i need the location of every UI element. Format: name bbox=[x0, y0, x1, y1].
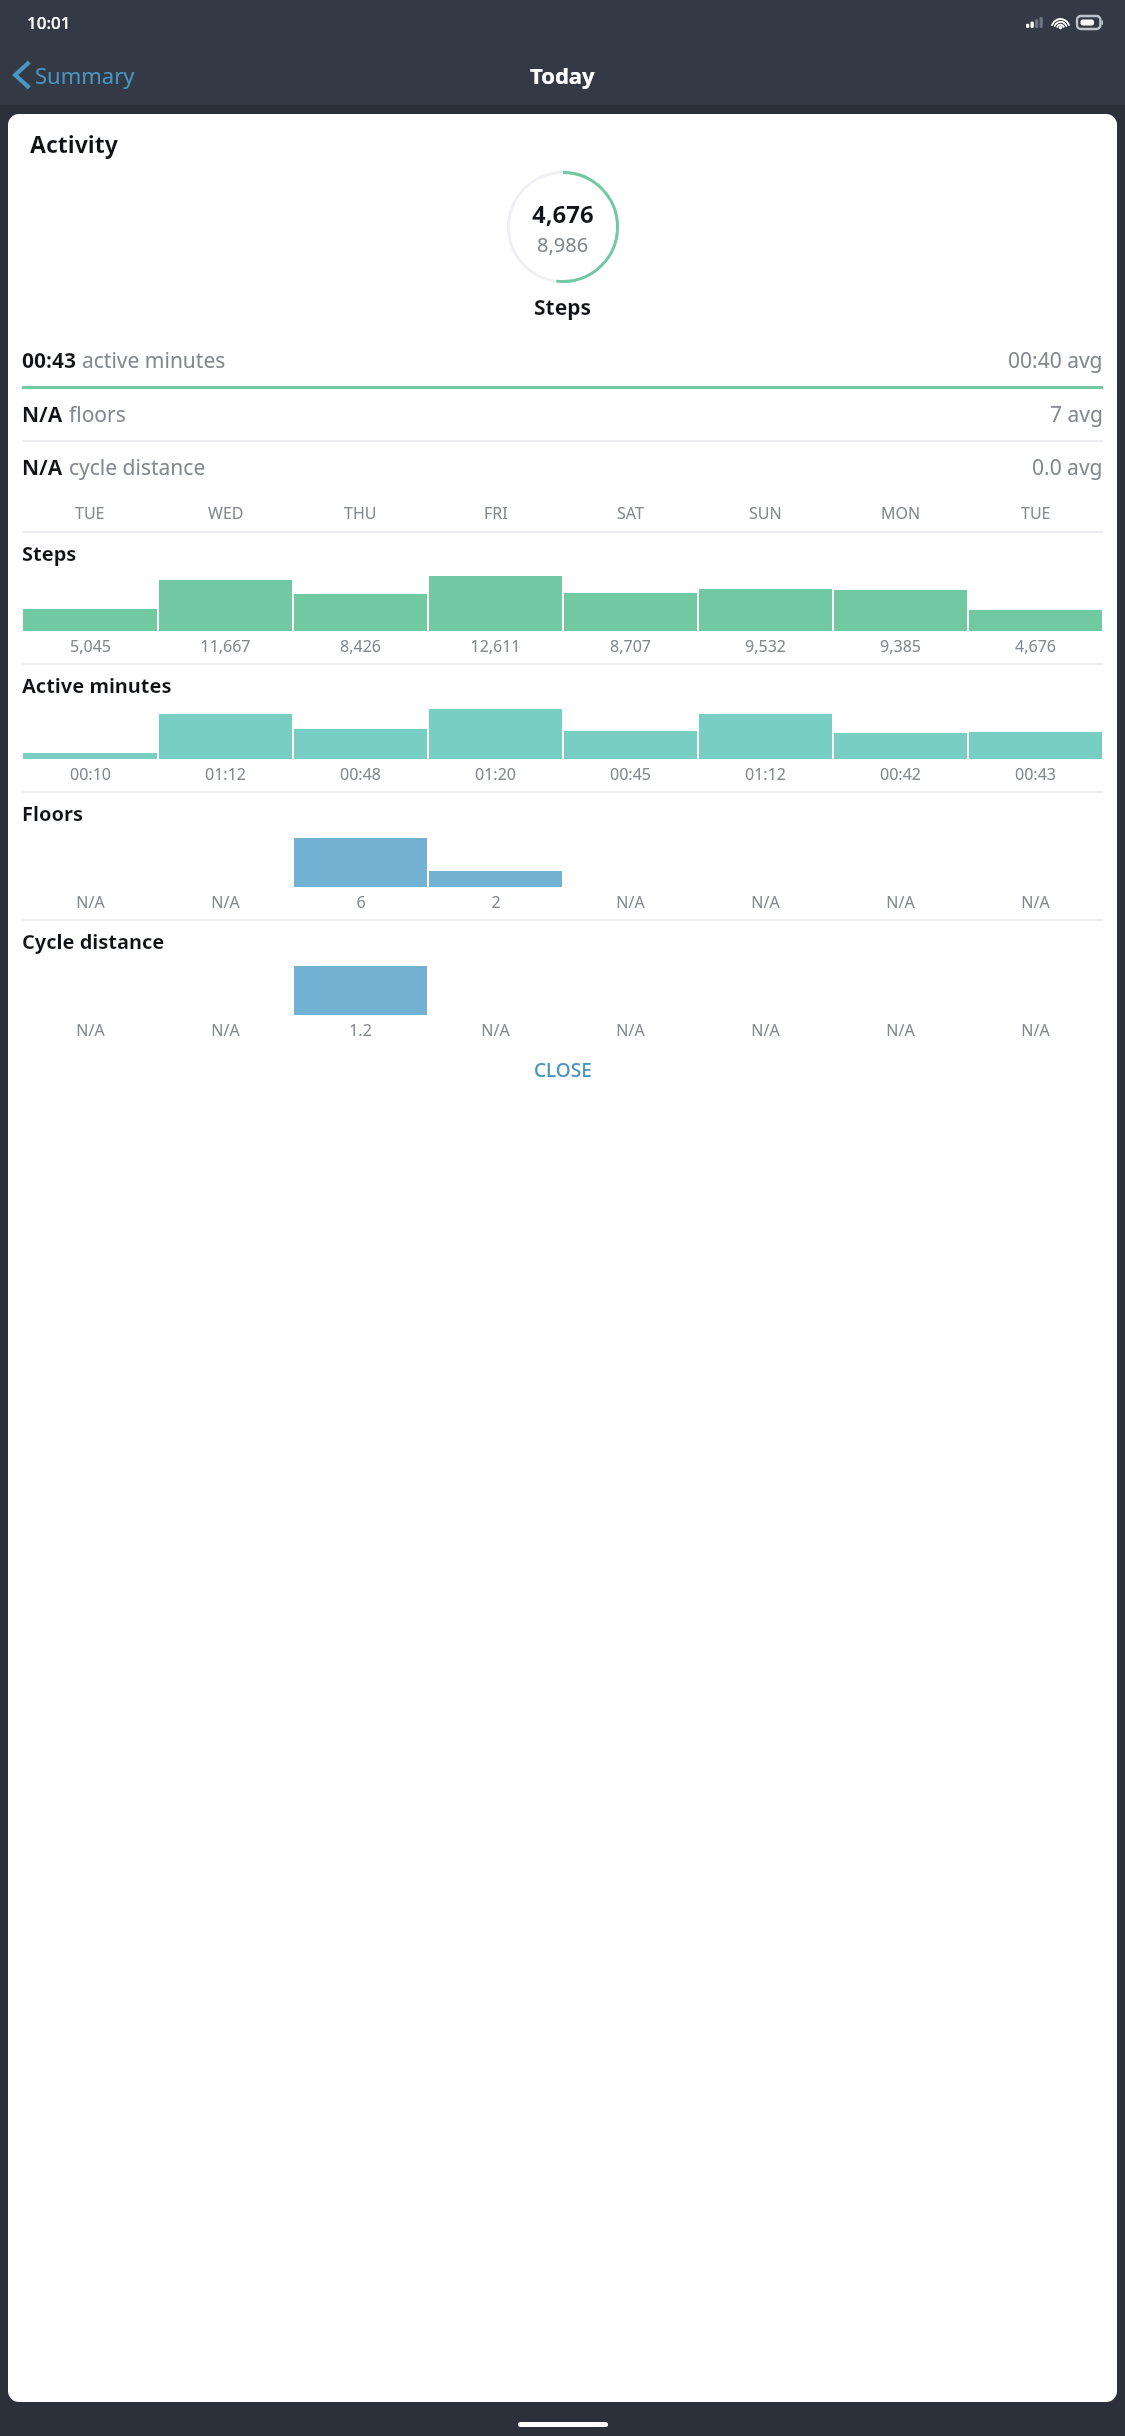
staticText: 2 bbox=[491, 891, 501, 913]
staticText: SUN bbox=[749, 502, 782, 524]
staticText: N/A bbox=[616, 1019, 645, 1041]
staticText: N/A bbox=[1021, 1019, 1050, 1041]
staticText: 01:12 bbox=[205, 763, 246, 785]
staticText: 00:43 bbox=[22, 346, 76, 375]
staticText: Activity bbox=[30, 128, 118, 159]
staticText: 00:40 avg bbox=[1008, 346, 1103, 375]
staticText: N/A bbox=[76, 891, 105, 913]
staticText: Floors bbox=[22, 800, 83, 827]
staticText: Active minutes bbox=[22, 672, 172, 699]
staticText: 10:01 bbox=[27, 11, 71, 34]
staticText: cycle distance bbox=[69, 453, 206, 482]
staticText: 7 avg bbox=[1050, 400, 1103, 429]
staticText: N/A bbox=[22, 400, 63, 429]
staticText: N/A bbox=[886, 1019, 915, 1041]
staticText: 8,986 bbox=[537, 231, 589, 258]
staticText: N/A bbox=[886, 891, 915, 913]
staticText: 00:48 bbox=[340, 763, 381, 785]
staticText: 4,676 bbox=[532, 197, 594, 230]
staticText: TUE bbox=[1021, 502, 1051, 524]
staticText: 9,385 bbox=[880, 635, 921, 657]
button[interactable]: CLOSE bbox=[534, 1057, 592, 1083]
staticText: Cycle distance bbox=[22, 928, 165, 955]
staticText: N/A bbox=[211, 891, 240, 913]
button[interactable]: 00:43 bbox=[8, 335, 1117, 386]
staticText: TUE bbox=[75, 502, 105, 524]
button[interactable]: N/A bbox=[8, 389, 1117, 440]
staticText: MON bbox=[881, 502, 921, 524]
staticText: active minutes bbox=[82, 346, 226, 375]
staticText: N/A bbox=[616, 891, 645, 913]
staticText: 01:20 bbox=[475, 763, 516, 785]
staticText: FRI bbox=[484, 502, 508, 524]
staticText: N/A bbox=[481, 1019, 510, 1041]
staticText: 8,707 bbox=[610, 635, 651, 657]
staticText: 00:42 bbox=[880, 763, 921, 785]
staticText: N/A bbox=[751, 1019, 780, 1041]
staticText: Steps bbox=[22, 540, 77, 567]
staticText: 11,667 bbox=[200, 635, 251, 657]
button[interactable]: Summary bbox=[0, 54, 147, 96]
staticText: 9,532 bbox=[745, 635, 786, 657]
staticText: 8,426 bbox=[340, 635, 381, 657]
staticText: Steps bbox=[534, 293, 592, 322]
staticText: 12,611 bbox=[470, 635, 521, 657]
staticText: N/A bbox=[22, 453, 63, 482]
staticText: Summary bbox=[35, 60, 135, 90]
staticText: Today bbox=[530, 60, 595, 90]
staticText: 00:45 bbox=[610, 763, 651, 785]
staticText: N/A bbox=[751, 891, 780, 913]
staticText: 0.0 avg bbox=[1032, 453, 1103, 482]
staticText: 01:12 bbox=[745, 763, 786, 785]
staticText: 00:10 bbox=[70, 763, 111, 785]
staticText: WED bbox=[208, 502, 244, 524]
staticText: 4,676 bbox=[1015, 635, 1056, 657]
staticText: floors bbox=[69, 400, 126, 429]
staticText: N/A bbox=[76, 1019, 105, 1041]
staticText: N/A bbox=[211, 1019, 240, 1041]
staticText: 00:43 bbox=[1015, 763, 1056, 785]
staticText: 5,045 bbox=[70, 635, 111, 657]
staticText: N/A bbox=[1021, 891, 1050, 913]
staticText: SAT bbox=[617, 502, 644, 524]
button[interactable]: N/A bbox=[8, 442, 1117, 493]
staticText: THU bbox=[344, 502, 377, 524]
staticText: 1.2 bbox=[349, 1019, 372, 1041]
staticText: 6 bbox=[356, 891, 366, 913]
